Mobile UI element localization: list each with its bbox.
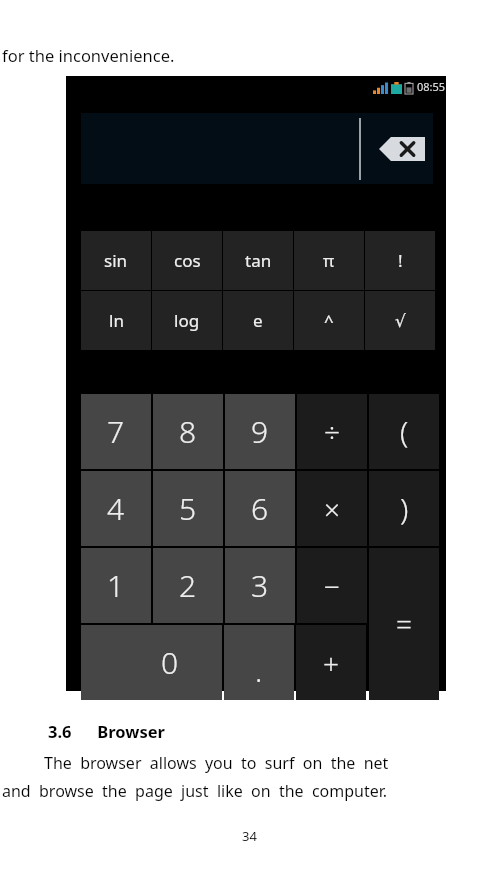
button[interactable]: ! [365,231,435,290]
button[interactable]: 0 [81,625,222,700]
button[interactable]: 3 [225,548,295,623]
staticText: ^ [324,309,334,332]
staticText: √ [395,311,406,331]
staticText: 5 [179,488,197,529]
staticText: 7 [107,411,125,452]
staticText: 3 [251,565,269,606]
staticText: tan [245,249,272,272]
button[interactable]: 8 [153,394,223,469]
staticText: ÷ [324,413,340,451]
button[interactable]: √ [365,291,435,350]
button[interactable]: e [223,291,293,350]
button[interactable]: 9 [225,394,295,469]
staticText: 08:55 [417,79,446,94]
staticText: 3.6 Browser [48,720,165,742]
button[interactable]: cos [152,231,222,290]
staticText: 1 [107,565,125,606]
staticText: = [396,605,412,643]
staticText: sin [104,249,128,272]
staticText: 0 [161,642,179,683]
button[interactable]: Backspace [377,136,427,162]
staticText: π [323,249,335,272]
button[interactable]: π [294,231,364,290]
button[interactable]: 2 [153,548,223,623]
staticText: ( [400,411,409,452]
button[interactable]: 1 [81,548,151,623]
button[interactable]: 6 [225,471,295,546]
button[interactable]: 7 [81,394,151,469]
button[interactable]: ÷ [297,394,367,469]
staticText: log [174,309,200,332]
staticText: ln [109,309,124,332]
staticText: ) [400,488,409,529]
button[interactable]: × [297,471,367,546]
staticText: . [255,650,263,691]
staticText: 4 [107,488,125,529]
button[interactable]: ^ [294,291,364,350]
button[interactable]: − [297,548,367,623]
button[interactable]: sin [81,231,151,290]
staticText: cos [174,249,201,272]
button[interactable]: 4 [81,471,151,546]
staticText: 8 [179,411,197,452]
button[interactable]: + [296,625,366,700]
staticText: × [324,490,340,528]
button[interactable]: ln [81,291,151,350]
button[interactable]: tan [223,231,293,290]
staticText: and browse the page just like on the com… [2,780,388,802]
button[interactable]: ) [369,471,439,546]
staticText: − [324,567,340,605]
button[interactable]: log [152,291,222,350]
staticText: ! [398,249,403,272]
staticText: + [323,644,339,682]
staticText: 34 [0,827,499,845]
button[interactable]: = [369,548,439,700]
staticText: The browser allows you to surf on the ne… [44,752,389,774]
staticText: e [253,309,263,332]
button[interactable]: Backspace [81,113,433,184]
button[interactable]: . [224,625,294,700]
button[interactable]: ( [369,394,439,469]
staticText: 9 [251,411,269,452]
staticText: for the inconvenience. [2,44,175,66]
staticText: 2 [179,565,197,606]
button[interactable]: 5 [153,471,223,546]
staticText: 6 [251,488,269,529]
